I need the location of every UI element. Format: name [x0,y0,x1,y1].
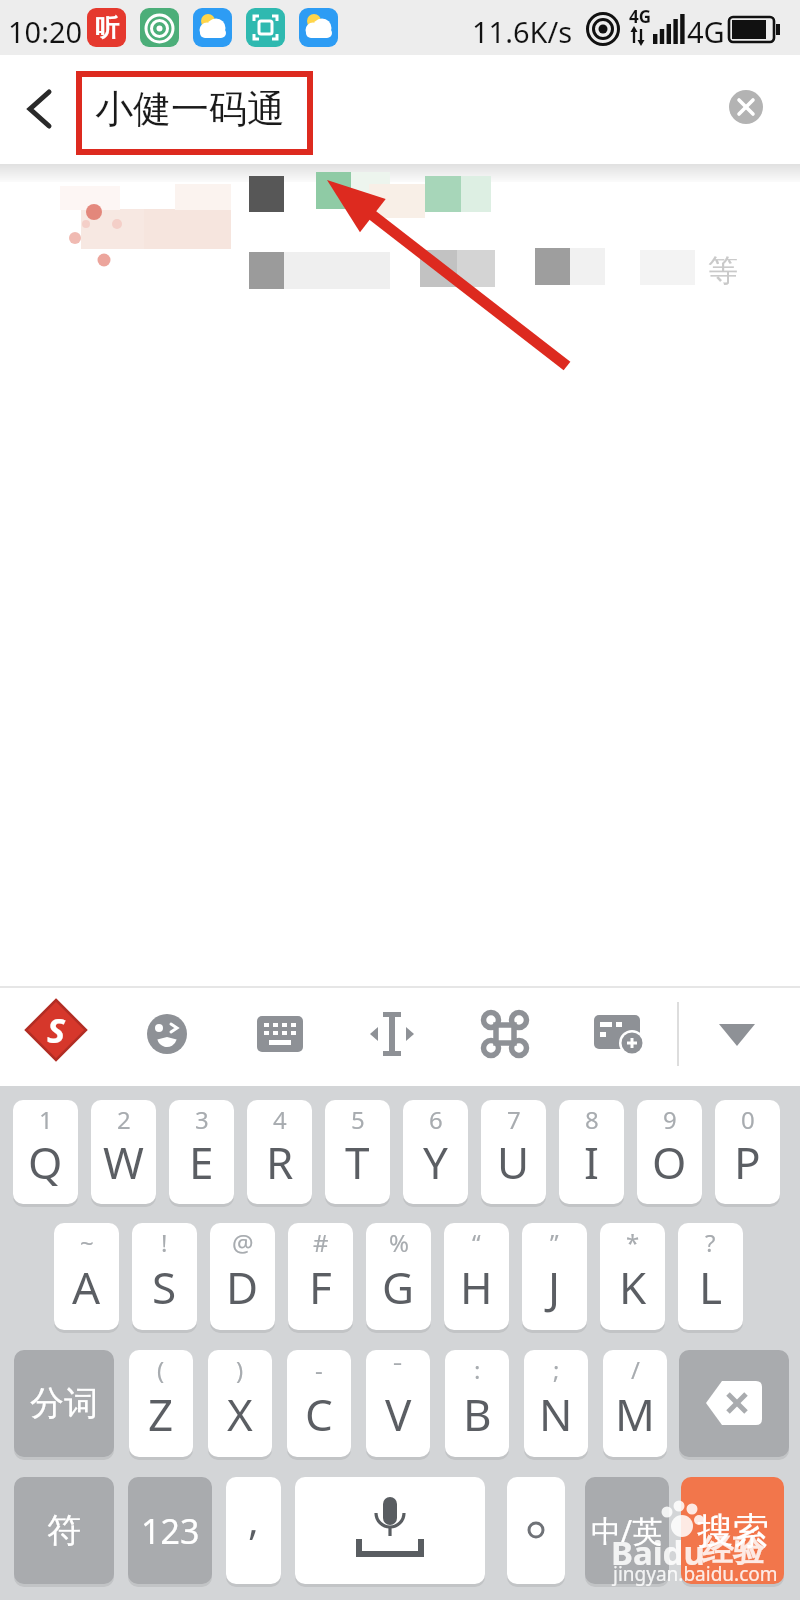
staticText: 123 [141,1508,200,1554]
staticText: jingyan.baidu.com [613,1561,778,1587]
button[interactable]: 符 [14,1477,114,1584]
button[interactable]: 9 [637,1100,702,1204]
staticText: # [313,1226,329,1259]
staticText: T [345,1132,370,1192]
staticText: 10:20 [8,12,83,51]
button[interactable]: % [366,1223,431,1330]
staticText: % [389,1226,409,1259]
button[interactable]: “ [444,1223,509,1330]
button[interactable]: 中/英 [585,1477,669,1584]
button[interactable]: ; [524,1350,588,1457]
staticText: E [189,1132,214,1192]
button[interactable] [368,1012,416,1056]
staticText: X [227,1384,253,1444]
staticText: / [631,1353,640,1386]
button[interactable] [146,1013,188,1055]
button[interactable] [482,1011,528,1057]
button[interactable]: / [603,1350,667,1457]
staticText: 3 [195,1103,209,1136]
button[interactable] [679,1350,789,1457]
staticText: 0 [741,1103,755,1136]
button[interactable]: ˉ [366,1350,430,1457]
button[interactable] [295,1477,485,1584]
staticText: Baidu [611,1530,705,1575]
staticText: 8 [585,1103,599,1136]
button[interactable]: 7 [481,1100,546,1204]
staticText: N [539,1384,573,1444]
button[interactable]: : [445,1350,509,1457]
staticText: I [584,1132,599,1192]
button[interactable]: @ [210,1223,275,1330]
staticText: Y [423,1132,448,1192]
button[interactable]: ~ [54,1223,119,1330]
button[interactable]: 1 [13,1100,78,1204]
button[interactable] [507,1477,565,1584]
staticText: 中/英 [591,1510,663,1551]
staticText: 听 [95,13,119,43]
button[interactable]: ” [522,1223,587,1330]
button[interactable]: 6 [403,1100,468,1204]
button[interactable]: ? [678,1223,743,1330]
button[interactable] [729,90,763,124]
staticText: O [652,1132,687,1192]
staticText: ? [705,1226,716,1259]
button[interactable]: S [26,1000,86,1060]
button[interactable]: 4 [247,1100,312,1204]
staticText: ; [553,1353,560,1386]
staticText: 7 [507,1103,521,1136]
button[interactable]: ( [129,1350,193,1457]
button[interactable]: 搜索 [681,1477,784,1584]
button[interactable] [14,85,62,133]
button[interactable] [257,1016,303,1052]
staticText: 小健一码通 [95,85,285,133]
staticText: R [266,1132,294,1192]
button[interactable]: ) [208,1350,272,1457]
staticText: P [734,1132,761,1192]
button[interactable]: ! [132,1223,197,1330]
staticText: 1 [39,1103,53,1136]
staticText: 9 [663,1103,677,1136]
staticText: W [103,1132,144,1192]
staticText: 6 [429,1103,443,1136]
staticText: 2 [117,1103,131,1136]
staticText: “ [472,1226,481,1259]
staticText: ) [236,1353,244,1386]
staticText: 5 [351,1103,365,1136]
staticText: S [47,1007,66,1053]
button[interactable]: - [287,1350,351,1457]
staticText: M [615,1384,655,1444]
staticText: F [309,1257,332,1317]
button[interactable]: , [226,1477,281,1584]
staticText: 等 [708,252,738,290]
button[interactable]: 5 [325,1100,390,1204]
button[interactable] [712,1018,762,1054]
staticText: ! [161,1226,168,1259]
staticText: L [699,1257,723,1317]
staticText: V [385,1384,412,1444]
button[interactable]: # [288,1223,353,1330]
button[interactable]: 0 [715,1100,780,1204]
staticText: * [626,1226,640,1259]
staticText: H [460,1257,493,1317]
staticText: Q [28,1132,63,1192]
staticText: 4G [687,12,725,51]
button[interactable]: 3 [169,1100,234,1204]
button[interactable]: * [600,1223,665,1330]
staticText: - [315,1353,323,1386]
button[interactable]: 分词 [14,1350,114,1457]
button[interactable]: 123 [128,1477,212,1584]
staticText: 11.6K/s [472,12,573,51]
staticText: B [463,1384,492,1444]
staticText: 经验 [702,1531,764,1570]
staticText: S [152,1257,177,1317]
staticText: C [305,1384,333,1444]
staticText: 分词 [30,1382,98,1425]
staticText: J [548,1257,561,1317]
button[interactable] [594,1015,646,1057]
button[interactable]: 2 [91,1100,156,1204]
staticText: ( [157,1353,165,1386]
staticText: A [72,1257,101,1317]
button[interactable]: 8 [559,1100,624,1204]
staticText: K [619,1257,647,1317]
staticText: G [382,1257,415,1317]
